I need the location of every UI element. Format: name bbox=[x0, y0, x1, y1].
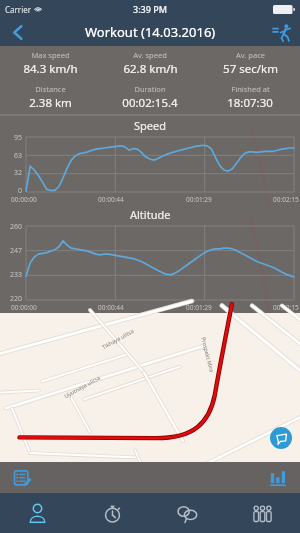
staticText: 0 bbox=[18, 186, 23, 196]
staticText: 32 bbox=[14, 168, 23, 178]
staticText: 00:00:44 bbox=[98, 303, 124, 312]
staticText: 00:02:15.4 bbox=[122, 95, 178, 111]
button[interactable]: Friends bbox=[225, 493, 300, 533]
button[interactable]: Av. pace bbox=[200, 46, 300, 80]
staticText: 57 sec/km bbox=[223, 61, 278, 77]
staticText: Distance bbox=[35, 84, 66, 94]
staticText: 00:01:29 bbox=[186, 303, 212, 312]
staticText: 00:00:00 bbox=[11, 195, 37, 204]
staticText: Prospekt Mira bbox=[200, 336, 216, 373]
staticText: Max speed bbox=[31, 50, 70, 60]
staticText: Av. pace bbox=[236, 50, 265, 60]
button[interactable]: Finished at bbox=[200, 80, 300, 114]
button[interactable]: Tikhaya ulitsa bbox=[0, 313, 300, 462]
staticText: Av. speed bbox=[133, 50, 167, 60]
button[interactable]: Charts bbox=[266, 466, 290, 490]
staticText: 260 bbox=[10, 222, 23, 232]
staticText: 00:01:29 bbox=[186, 195, 212, 204]
staticText: Altitude bbox=[130, 207, 171, 222]
staticText: 3:39 PM bbox=[133, 3, 167, 15]
button[interactable]: Edit notes bbox=[10, 466, 34, 490]
staticText: 247 bbox=[10, 246, 23, 256]
button[interactable]: Max speed bbox=[0, 46, 100, 80]
staticText: 95 bbox=[14, 133, 23, 143]
staticText: Tikhaya ulitsa bbox=[101, 327, 135, 350]
staticText: 00:00:00 bbox=[11, 303, 37, 312]
button[interactable]: Stopwatch bbox=[75, 493, 150, 533]
button[interactable]: Workout type bbox=[264, 18, 300, 46]
staticText: 62.8 km/h bbox=[123, 61, 178, 77]
staticText: 84.3 km/h bbox=[23, 61, 78, 77]
staticText: Uyutnaya ulitsa bbox=[63, 374, 101, 399]
staticText: Carrier bbox=[5, 4, 32, 15]
staticText: 2.38 km bbox=[29, 95, 72, 111]
button[interactable]: Profile bbox=[0, 493, 75, 533]
staticText: 18:07:30 bbox=[227, 95, 273, 111]
staticText: Speed bbox=[134, 118, 166, 133]
staticText: 00:02:15 bbox=[273, 303, 299, 312]
staticText: 00:02:15 bbox=[273, 195, 299, 204]
button[interactable]: Duration bbox=[100, 80, 200, 114]
button[interactable]: Distance bbox=[0, 80, 100, 114]
staticText: 63 bbox=[14, 151, 23, 161]
staticText: 00:00:44 bbox=[98, 195, 124, 204]
button[interactable]: Av. speed bbox=[100, 46, 200, 80]
button[interactable]: Back bbox=[0, 18, 34, 46]
staticText: 233 bbox=[10, 270, 23, 280]
staticText: Duration bbox=[134, 84, 166, 94]
staticText: Workout (14.03.2016) bbox=[85, 23, 216, 41]
staticText: Finished at bbox=[231, 84, 270, 94]
button[interactable]: Map options bbox=[270, 427, 292, 449]
button[interactable]: Messages bbox=[150, 493, 225, 533]
staticText: 220 bbox=[10, 294, 23, 304]
